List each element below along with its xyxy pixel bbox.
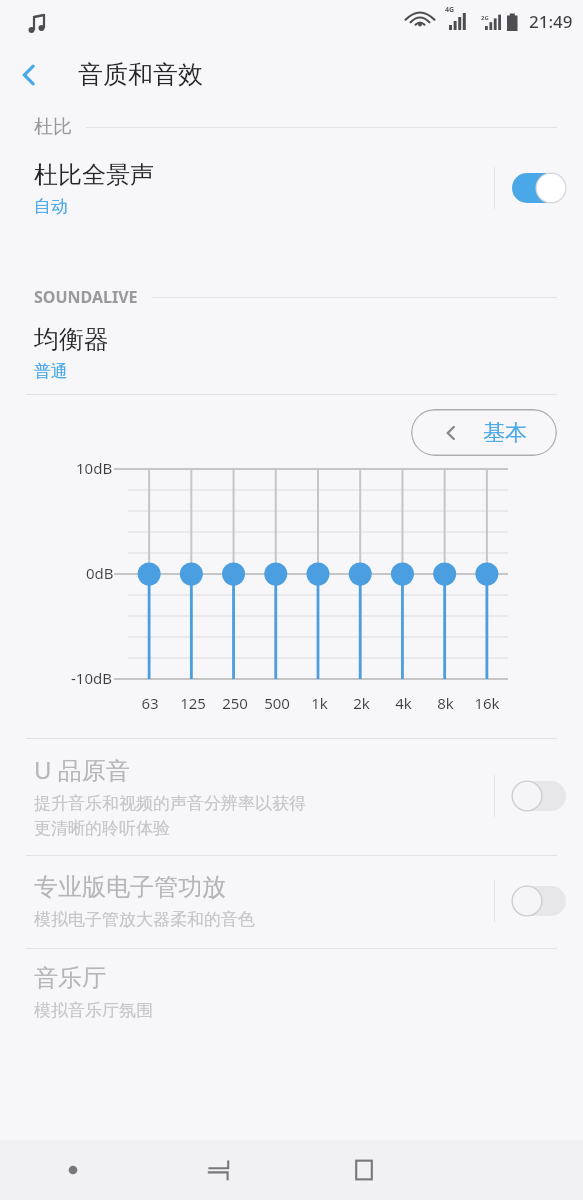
- button[interactable]: 基本: [411, 409, 557, 456]
- staticText: 250: [222, 693, 248, 713]
- staticText: 1k: [311, 693, 328, 713]
- staticText: 普通: [34, 361, 68, 382]
- button[interactable]: U 品原音 toggle, off: [495, 765, 583, 827]
- staticText: 0dB: [86, 563, 114, 583]
- staticText: 63: [141, 693, 159, 713]
- button[interactable]: 杜比全景声: [0, 148, 583, 228]
- staticText: -10dB: [71, 668, 112, 688]
- staticText: 音质和音效: [78, 59, 203, 90]
- staticText: 自动: [34, 196, 68, 217]
- staticText: 8k: [437, 693, 454, 713]
- staticText: 4G: [445, 5, 455, 15]
- staticText: 16k: [474, 693, 500, 713]
- staticText: 模拟电子管放大器柔和的音色: [34, 909, 255, 930]
- staticText: 专业版电子管功放: [34, 872, 226, 902]
- staticText: 4k: [395, 693, 412, 713]
- staticText: 均衡器: [34, 324, 109, 355]
- staticText: 500: [264, 693, 290, 713]
- staticText: 2k: [353, 693, 370, 713]
- button[interactable]: Dolby Atmos toggle, on: [495, 148, 583, 228]
- button[interactable]: Back: [0, 46, 58, 104]
- button[interactable]: U 品原音: [0, 739, 583, 855]
- staticText: 基本: [483, 419, 527, 447]
- button[interactable]: Recents: [291, 1140, 437, 1200]
- staticText: 2G: [481, 14, 489, 22]
- staticText: 杜比全景声: [34, 160, 154, 190]
- staticText: 音乐厅: [34, 963, 106, 993]
- staticText: SOUNDALIVE: [34, 286, 138, 308]
- staticText: 125: [180, 693, 206, 713]
- staticText: 杜比: [34, 115, 72, 139]
- staticText: 21:49: [529, 10, 573, 33]
- button[interactable]: 专业版电子管功放: [0, 856, 583, 948]
- button[interactable]: 专业版电子管功放 toggle, off: [495, 870, 583, 932]
- staticText: U 品原音: [34, 753, 130, 786]
- staticText: 更清晰的聆听体验: [34, 818, 170, 839]
- button[interactable]: 均衡器: [0, 318, 583, 388]
- button[interactable]: Back: [145, 1140, 291, 1200]
- button[interactable]: 音乐厅: [0, 949, 583, 1021]
- staticText: 提升音乐和视频的声音分辨率以获得: [34, 793, 306, 814]
- button[interactable]: Menu: [0, 1140, 145, 1200]
- staticText: 10dB: [76, 458, 113, 478]
- staticText: 模拟音乐厅氛围: [34, 1000, 153, 1021]
